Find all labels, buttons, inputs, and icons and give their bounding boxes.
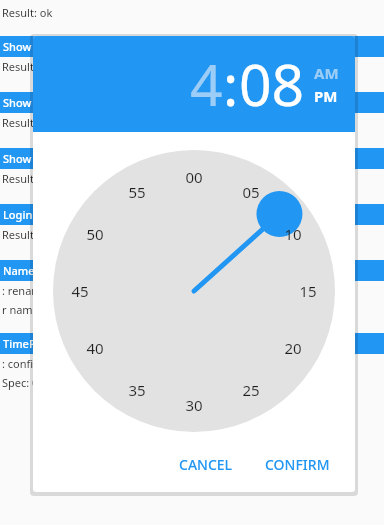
staticText: CONFIRM — [265, 455, 330, 474]
staticText: 55 — [128, 182, 146, 202]
button[interactable]: Show dialog — [0, 36, 384, 57]
button[interactable]: CANCEL — [170, 447, 242, 482]
staticText: Result: ok — [2, 59, 53, 74]
staticText: Show dialog — [3, 151, 67, 166]
staticText: 00 — [185, 167, 203, 187]
button[interactable]: CONFIRM — [256, 447, 339, 482]
staticText: : rename — [2, 283, 48, 298]
staticText: 50 — [86, 224, 104, 244]
staticText: : confirm — [2, 356, 48, 371]
button[interactable]: 08 — [239, 45, 305, 123]
staticText: 30 — [185, 395, 203, 415]
staticText: 10 — [284, 224, 302, 244]
staticText: Show dialog — [3, 39, 67, 54]
staticText: 25 — [242, 380, 260, 400]
staticText: Result: - — [2, 171, 44, 186]
staticText: 15 — [299, 281, 317, 301]
staticText: Name field — [3, 263, 61, 278]
staticText: 20 — [284, 338, 302, 358]
staticText: PM — [314, 86, 338, 106]
staticText: 08 — [239, 45, 305, 123]
staticText: 35 — [128, 380, 146, 400]
staticText: TimePicker — [3, 336, 62, 351]
button[interactable]: AM — [314, 63, 339, 83]
button[interactable]: Show dialog — [0, 148, 384, 169]
staticText: 45 — [71, 281, 89, 301]
button[interactable]: Show dialog — [0, 92, 384, 113]
button[interactable]: PM — [314, 86, 338, 106]
button[interactable]: Login dialog — [0, 204, 384, 225]
button[interactable]: Name field — [0, 260, 384, 281]
staticText: Spec: 04:14:00 — [2, 375, 76, 390]
staticText: Show dialog — [3, 95, 67, 110]
button[interactable]: Select minutes on dial — [53, 150, 335, 432]
staticText: : — [223, 45, 239, 123]
staticText: r name — [2, 302, 39, 317]
staticText: 4 — [190, 45, 223, 123]
staticText: AM — [314, 63, 339, 83]
staticText: 05 — [242, 182, 260, 202]
staticText: Login dialog — [3, 207, 68, 222]
staticText: Result: ok — [2, 115, 53, 130]
button[interactable]: 4 — [190, 45, 223, 123]
staticText: CANCEL — [179, 455, 233, 474]
button[interactable]: TimePicker — [0, 333, 384, 354]
staticText: Result: ok — [2, 5, 53, 20]
staticText: 40 — [86, 338, 104, 358]
staticText: Result: ok — [2, 227, 53, 242]
